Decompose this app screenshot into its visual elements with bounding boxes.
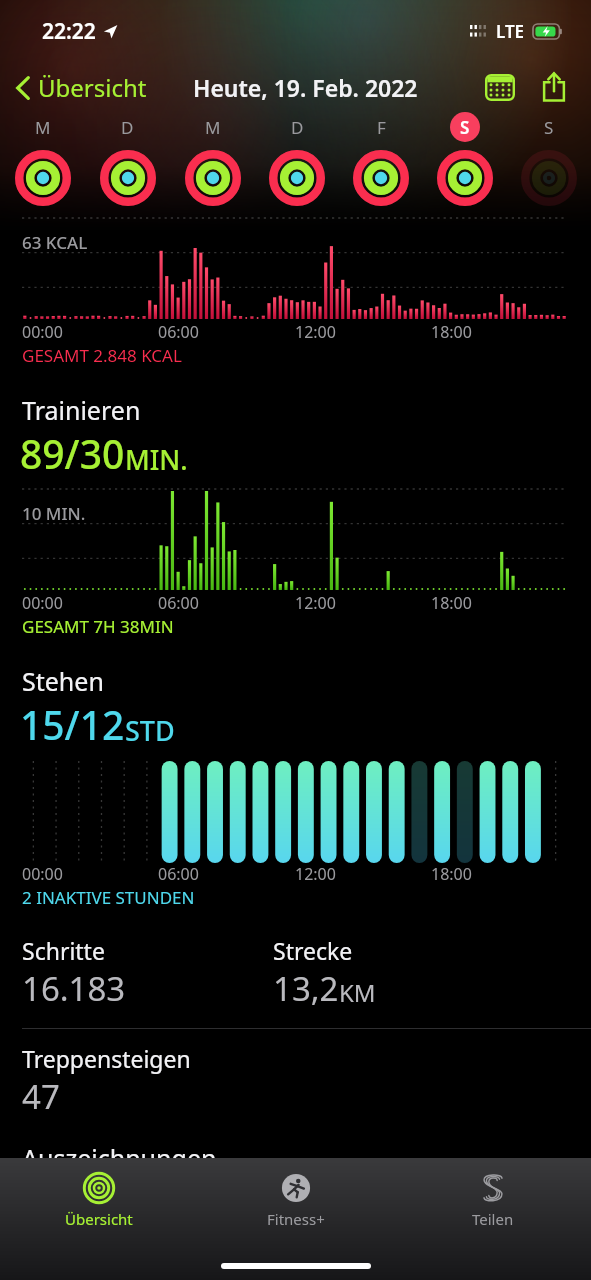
staticText: LTE	[496, 20, 525, 43]
staticText: Übersicht	[38, 71, 147, 104]
staticText: 63 KCAL	[22, 231, 88, 254]
button[interactable]: Übersicht	[0, 1168, 197, 1233]
staticText: Stehen	[22, 664, 104, 698]
staticText: S	[544, 116, 554, 139]
button[interactable]	[507, 147, 591, 209]
staticText: 06:00	[158, 321, 199, 343]
staticText: MIN.	[125, 441, 188, 478]
staticText: F	[377, 116, 386, 139]
staticText: 06:00	[158, 592, 199, 614]
button[interactable]	[255, 147, 339, 209]
button[interactable]: Kalender	[477, 66, 523, 109]
button[interactable]: Teilen	[394, 1168, 591, 1233]
staticText: 2 INAKTIVE STUNDEN	[22, 886, 195, 909]
button[interactable]	[0, 147, 85, 209]
staticText: 18:00	[431, 321, 472, 343]
staticText: 18:00	[431, 863, 472, 885]
staticText: 15/12	[20, 698, 125, 751]
staticText: 06:00	[158, 863, 199, 885]
staticText: 00:00	[22, 863, 63, 885]
staticText: STD	[125, 712, 175, 749]
staticText: 18:00	[431, 592, 472, 614]
staticText: Übersicht	[65, 1209, 133, 1229]
button[interactable]: Übersicht	[0, 67, 155, 108]
staticText: 10 MIN.	[22, 502, 86, 525]
staticText: 00:00	[22, 592, 63, 614]
staticText: 89/30	[20, 427, 125, 480]
staticText: S	[460, 116, 470, 139]
staticText: 47	[22, 1074, 60, 1119]
staticText: GESAMT 2.848 KCAL	[22, 344, 182, 367]
staticText: GESAMT 7H 38MIN	[22, 615, 174, 638]
staticText: 16.183	[22, 966, 126, 1011]
button[interactable]	[339, 147, 423, 209]
staticText: 12:00	[295, 592, 336, 614]
button[interactable]: Fitness+	[197, 1168, 394, 1233]
staticText: Treppensteigen	[22, 1043, 191, 1074]
staticText: Trainieren	[22, 393, 141, 427]
staticText: D	[291, 116, 304, 139]
staticText: M	[205, 116, 221, 139]
staticText: 22:22	[42, 17, 96, 46]
staticText: M	[35, 116, 51, 139]
button[interactable]: Teilen	[533, 64, 575, 111]
staticText: 00:00	[22, 321, 63, 343]
staticText: Heute, 19. Feb. 2022	[193, 72, 418, 103]
staticText: Schritte	[22, 935, 105, 966]
staticText: Teilen	[472, 1209, 514, 1229]
staticText: D	[121, 116, 134, 139]
staticText: Strecke	[273, 935, 353, 966]
staticText: 12:00	[295, 321, 336, 343]
button[interactable]	[85, 147, 170, 209]
staticText: KM	[339, 976, 376, 1009]
button[interactable]	[170, 147, 255, 209]
staticText: 13,2	[273, 966, 339, 1011]
button[interactable]	[423, 147, 507, 209]
staticText: Auszeichnungen	[22, 1141, 217, 1175]
staticText: Fitness+	[267, 1209, 325, 1229]
staticText: 12:00	[295, 863, 336, 885]
